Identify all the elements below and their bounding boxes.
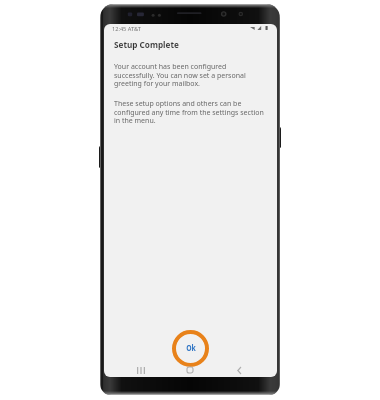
button[interactable]: Home: [180, 360, 200, 377]
staticText: 12:45 AT&T: [112, 25, 141, 33]
button[interactable]: Recents: [131, 360, 151, 377]
staticText: Your account has been configured success…: [114, 62, 261, 88]
button[interactable]: Back: [229, 360, 249, 377]
button[interactable]: Ok: [172, 330, 209, 367]
staticText: Setup Complete: [114, 39, 179, 50]
staticText: These setup options and others can be co…: [114, 99, 264, 125]
staticText: Ok: [186, 342, 196, 354]
